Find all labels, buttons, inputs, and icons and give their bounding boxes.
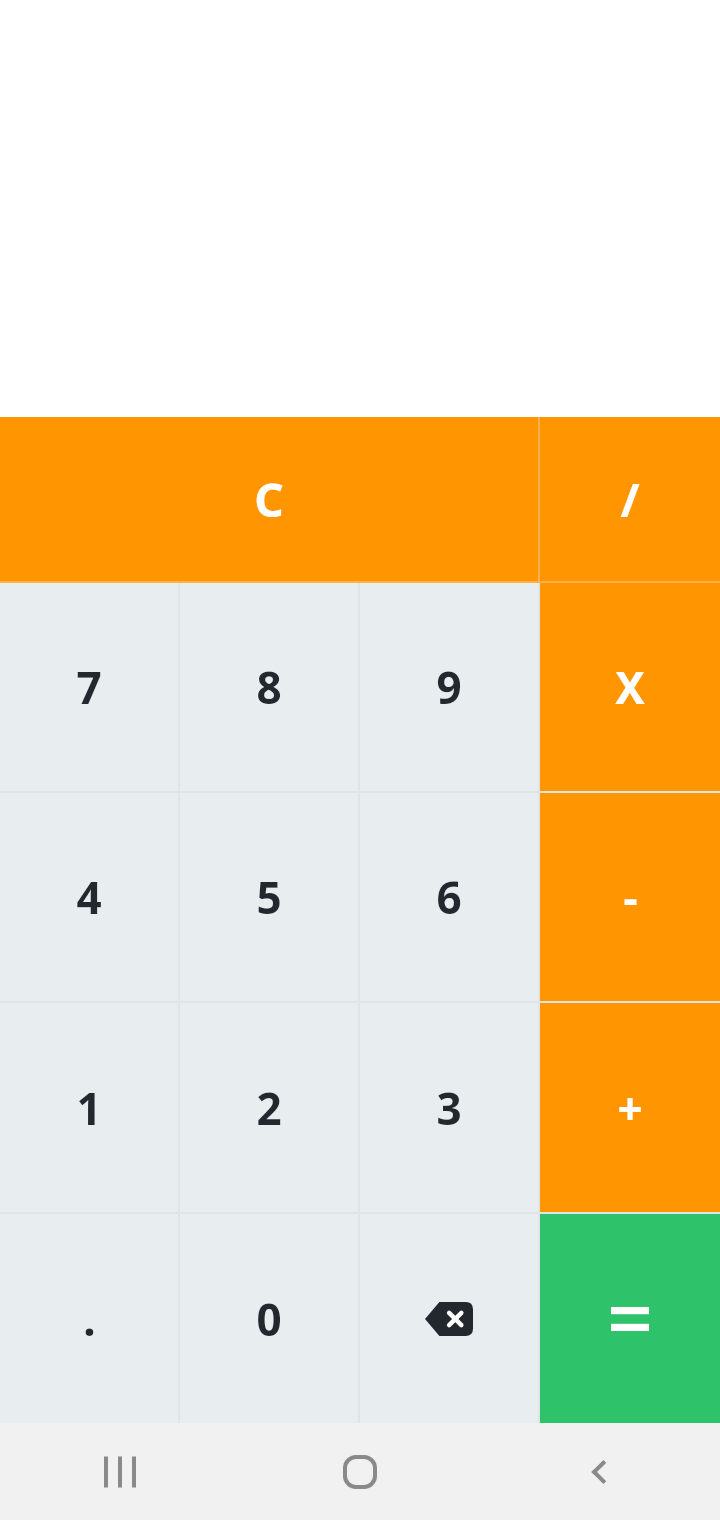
button[interactable]: Recent apps [0, 1423, 240, 1520]
button[interactable]: - [540, 793, 720, 1001]
button[interactable]: + [540, 1003, 720, 1212]
staticText: 9 [436, 657, 462, 717]
button[interactable]: 6 [360, 793, 538, 1001]
staticText: + [617, 1078, 643, 1138]
staticText: . [83, 1289, 96, 1349]
button[interactable]: 2 [180, 1003, 358, 1212]
button[interactable]: 1 [0, 1003, 178, 1212]
staticText: 3 [436, 1078, 462, 1138]
button[interactable]: 7 [0, 583, 178, 791]
button[interactable]: 0 [180, 1214, 358, 1423]
staticText: 8 [256, 657, 282, 717]
button[interactable]: Back [480, 1423, 720, 1520]
button[interactable]: 5 [180, 793, 358, 1001]
button[interactable]: 8 [180, 583, 358, 791]
staticText: 6 [436, 867, 462, 927]
staticText: 1 [76, 1078, 102, 1138]
button[interactable]: C [0, 417, 538, 581]
button[interactable]: 3 [360, 1003, 538, 1212]
staticText: 2 [256, 1078, 282, 1138]
button[interactable]: 4 [0, 793, 178, 1001]
staticText: - [623, 867, 638, 927]
button[interactable]: / [540, 417, 720, 581]
staticText: 5 [256, 867, 282, 927]
staticText: X [615, 657, 645, 717]
button[interactable]: Backspace [360, 1214, 538, 1423]
button[interactable]: . [0, 1214, 178, 1423]
staticText: 7 [76, 657, 102, 717]
button[interactable]: Home [240, 1423, 480, 1520]
button[interactable]: Equals [540, 1214, 720, 1423]
button[interactable]: 9 [360, 583, 538, 791]
staticText: 4 [76, 867, 102, 927]
staticText: C [254, 468, 284, 531]
staticText: / [620, 468, 640, 531]
button[interactable]: X [540, 583, 720, 791]
staticText: 0 [256, 1289, 282, 1349]
